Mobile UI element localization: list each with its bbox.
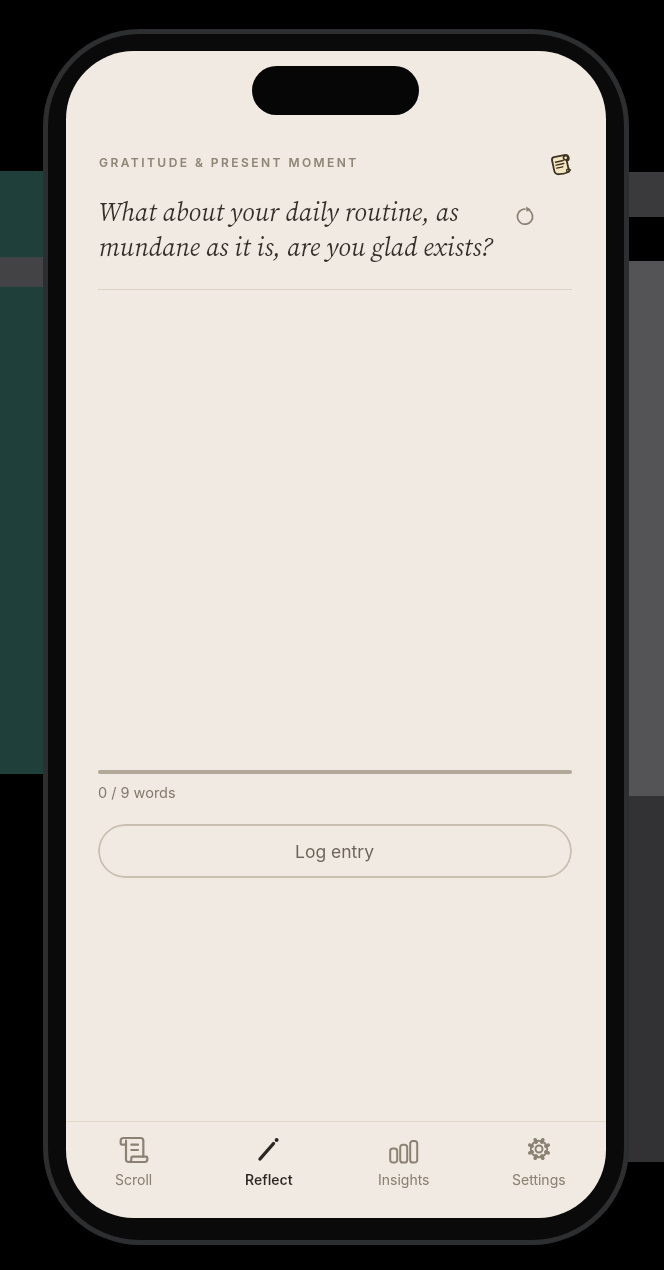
button[interactable] xyxy=(514,205,536,227)
button[interactable]: Reflect xyxy=(201,1134,336,1214)
staticText: Insights xyxy=(378,1171,430,1188)
button[interactable]: Log entry xyxy=(98,824,572,878)
button[interactable]: Scroll xyxy=(66,1134,201,1214)
button[interactable] xyxy=(548,152,574,178)
staticText: Reflect xyxy=(245,1171,293,1188)
staticText: GRATITUDE & PRESENT MOMENT xyxy=(99,155,359,170)
staticText: Settings xyxy=(512,1171,566,1188)
staticText: 0 / 9 words xyxy=(98,784,176,802)
staticText: What about your daily routine, as mundan… xyxy=(99,195,579,265)
staticText: Scroll xyxy=(115,1171,153,1188)
button[interactable]: Insights xyxy=(336,1134,471,1214)
button[interactable]: Settings xyxy=(471,1134,606,1214)
staticText: Log entry xyxy=(295,841,375,862)
